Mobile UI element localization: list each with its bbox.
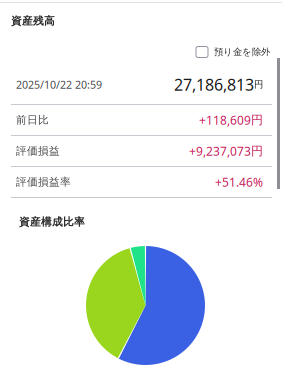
staticText: 円 bbox=[254, 79, 263, 90]
staticText: 評価損益率 bbox=[16, 175, 71, 188]
staticText: +9,237,073 bbox=[189, 143, 251, 159]
staticText: +51.46% bbox=[215, 174, 263, 190]
button[interactable]: 預り金を除外 bbox=[196, 46, 270, 58]
staticText: 27,186,813 bbox=[174, 74, 254, 95]
staticText: 資産構成比率 bbox=[19, 215, 85, 228]
staticText: 評価損益 bbox=[16, 144, 60, 157]
staticText: 2025/10/22 20:59 bbox=[16, 77, 102, 92]
staticText: +118,609 bbox=[199, 112, 251, 128]
staticText: 資産残高 bbox=[11, 14, 55, 27]
staticText: 預り金を除外 bbox=[214, 46, 270, 58]
staticText: 円 bbox=[251, 144, 263, 158]
staticText: 前日比 bbox=[16, 113, 49, 126]
staticText: 円 bbox=[251, 113, 263, 127]
